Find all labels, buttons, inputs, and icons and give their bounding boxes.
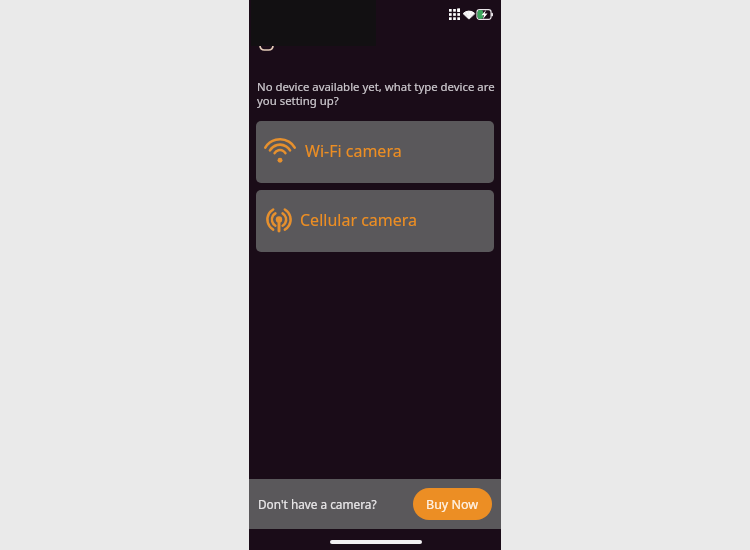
other: Wi-Fi xyxy=(463,9,475,20)
button[interactable]: Cellular camera xyxy=(256,190,494,252)
staticText: No device available yet, what type devic… xyxy=(257,79,501,108)
button[interactable]: Wi-Fi camera xyxy=(256,121,494,183)
other: Battery charging xyxy=(477,9,493,20)
staticText: Cellular camera xyxy=(300,209,418,231)
button[interactable]: Buy Now xyxy=(413,488,492,520)
staticText: Don't have a camera? xyxy=(258,496,377,512)
other: Signal strength xyxy=(449,9,460,20)
staticText: Buy Now xyxy=(426,496,479,513)
staticText: Wi-Fi camera xyxy=(305,140,402,162)
